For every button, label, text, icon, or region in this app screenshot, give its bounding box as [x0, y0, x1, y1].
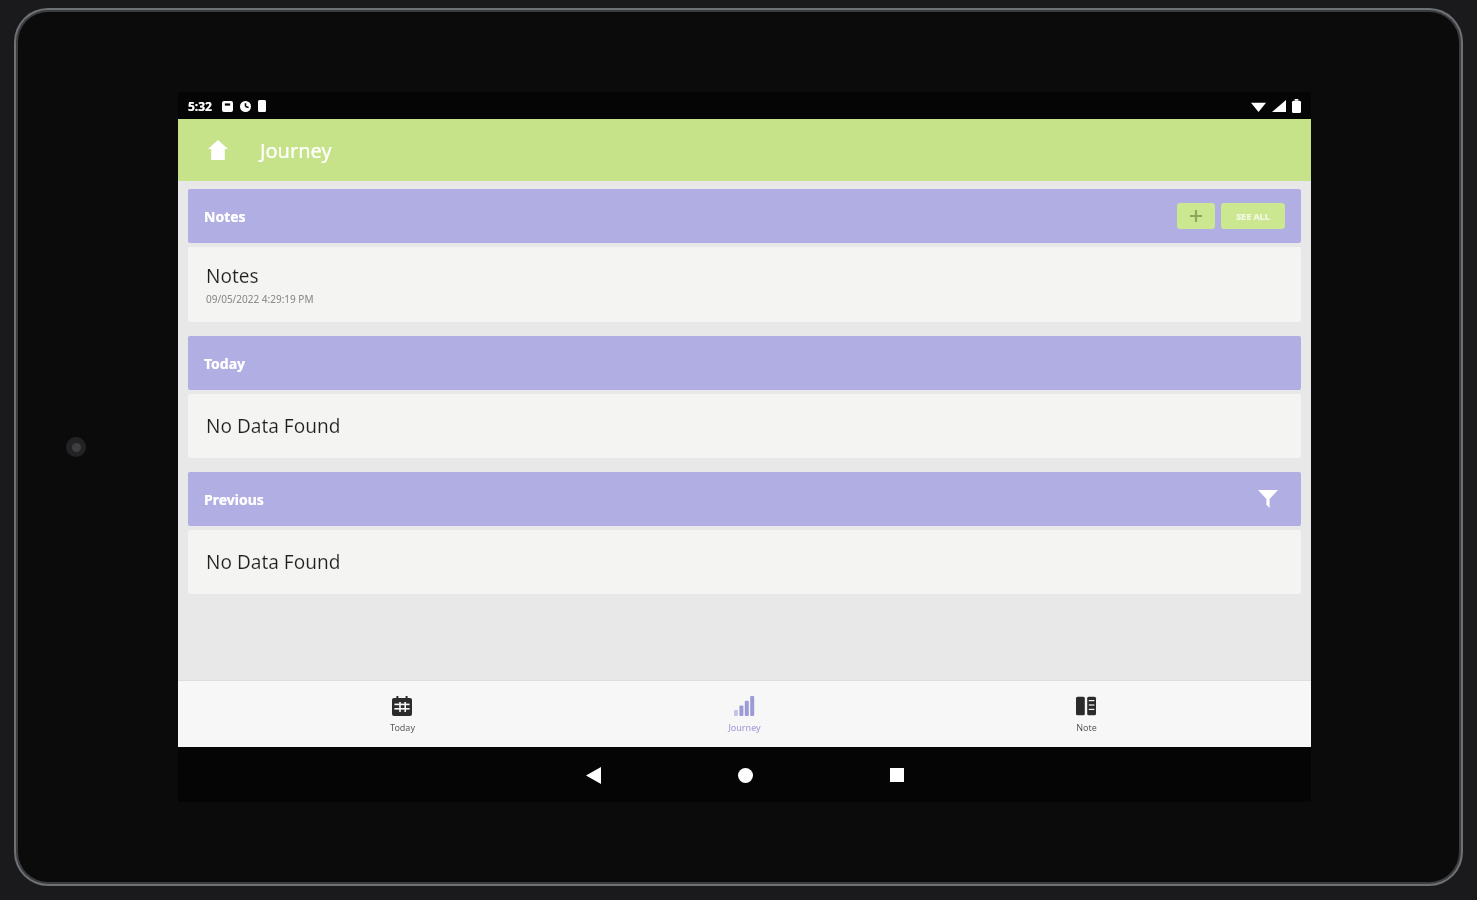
staticText: Notes: [206, 263, 259, 289]
button[interactable]: Home: [718, 748, 772, 802]
staticText: Journey: [728, 721, 761, 733]
button[interactable]: Note: [1038, 681, 1134, 747]
staticText: Journey: [260, 137, 332, 164]
staticText: Notes: [204, 207, 246, 226]
staticText: No Data Found: [206, 413, 341, 439]
button[interactable]: Today: [354, 681, 450, 747]
staticText: Today: [204, 354, 246, 373]
staticText: SEE ALL: [1236, 210, 1270, 222]
button[interactable]: Back: [566, 748, 620, 802]
staticText: 5:32: [188, 98, 212, 114]
button[interactable]: Recent apps: [870, 748, 924, 802]
staticText: Note: [1076, 721, 1097, 733]
staticText: Today: [390, 721, 415, 733]
button[interactable]: Journey: [696, 681, 792, 747]
button[interactable]: Today: [188, 336, 1301, 390]
button[interactable]: No Data Found: [188, 394, 1301, 458]
staticText: Previous: [204, 490, 264, 509]
button[interactable]: Add note: [1177, 203, 1215, 229]
button[interactable]: Home: [198, 130, 238, 170]
button[interactable]: Previous: [188, 472, 1301, 526]
staticText: No Data Found: [206, 549, 341, 575]
button[interactable]: Notes: [188, 247, 1301, 322]
button[interactable]: No Data Found: [188, 530, 1301, 594]
button[interactable]: Filter: [1251, 482, 1285, 516]
button[interactable]: Notes: [188, 189, 1301, 243]
button[interactable]: SEE ALL: [1221, 203, 1285, 229]
staticText: 09/05/2022 4:29:19 PM: [206, 292, 314, 306]
